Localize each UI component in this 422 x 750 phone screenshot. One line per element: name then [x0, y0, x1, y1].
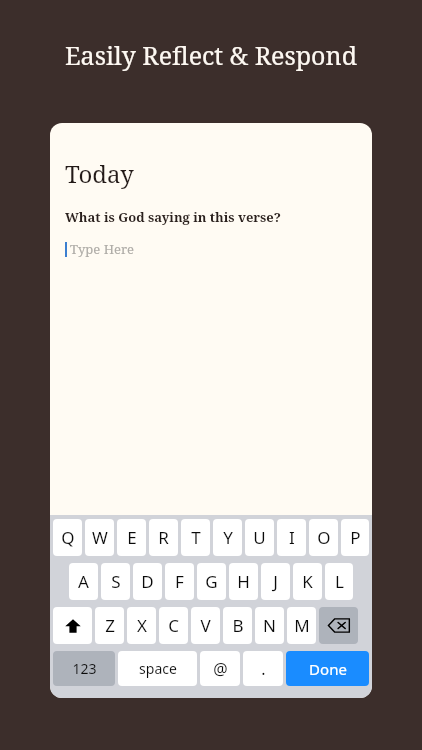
staticText: Y [223, 526, 233, 549]
staticText: Type Here [70, 240, 134, 258]
button[interactable]: K [293, 563, 322, 600]
staticText: I [289, 526, 295, 549]
button[interactable]: @ [200, 651, 240, 686]
button[interactable]: N [255, 607, 284, 644]
button[interactable]: Z [95, 607, 124, 644]
button[interactable]: V [191, 607, 220, 644]
button[interactable]: E [117, 519, 146, 556]
button[interactable]: G [197, 563, 226, 600]
button[interactable]: R [149, 519, 178, 556]
staticText: Today [65, 157, 134, 190]
button[interactable]: U [245, 519, 274, 556]
staticText: space [139, 659, 177, 678]
button[interactable]: B [223, 607, 252, 644]
staticText: C [168, 614, 179, 637]
staticText: L [335, 570, 344, 593]
button[interactable]: 123 [53, 651, 115, 686]
button[interactable]: I [277, 519, 306, 556]
staticText: P [350, 526, 361, 549]
button[interactable]: X [127, 607, 156, 644]
staticText: S [111, 570, 121, 593]
button[interactable]: space [118, 651, 197, 686]
button[interactable]: . [243, 651, 283, 686]
button[interactable]: M [287, 607, 316, 644]
button[interactable]: F [165, 563, 194, 600]
button[interactable]: C [159, 607, 188, 644]
staticText: Q [61, 526, 75, 549]
staticText: A [78, 570, 89, 593]
button[interactable]: Type Here [65, 240, 357, 258]
staticText: W [92, 526, 108, 549]
button[interactable]: P [341, 519, 369, 556]
staticText: X [137, 614, 147, 637]
staticText: . [261, 658, 266, 680]
staticText: M [294, 614, 310, 637]
button[interactable]: Backspace [319, 607, 358, 644]
staticText: 123 [72, 659, 97, 678]
staticText: Easily Reflect & Respond [65, 38, 357, 72]
staticText: U [253, 526, 266, 549]
button[interactable]: T [181, 519, 210, 556]
button[interactable]: S [101, 563, 130, 600]
button[interactable]: J [261, 563, 290, 600]
staticText: B [232, 614, 244, 637]
button[interactable]: D [133, 563, 162, 600]
button[interactable]: Done [286, 651, 369, 686]
staticText: @ [213, 658, 228, 680]
button[interactable]: Q [53, 519, 82, 556]
staticText: What is God saying in this verse? [65, 208, 281, 226]
staticText: O [317, 526, 331, 549]
staticText: Done [309, 659, 347, 679]
staticText: E [127, 526, 137, 549]
button[interactable]: W [85, 519, 114, 556]
button[interactable]: Shift [53, 607, 92, 644]
button[interactable]: H [229, 563, 258, 600]
staticText: G [205, 570, 218, 593]
staticText: F [175, 570, 184, 593]
staticText: T [191, 526, 201, 549]
button[interactable]: L [325, 563, 353, 600]
staticText: Z [105, 614, 115, 637]
staticText: V [200, 614, 211, 637]
staticText: N [263, 614, 276, 637]
staticText: J [273, 570, 278, 593]
button[interactable]: A [69, 563, 98, 600]
staticText: D [141, 570, 154, 593]
button[interactable]: Y [213, 519, 242, 556]
staticText: K [302, 570, 313, 593]
button[interactable]: O [309, 519, 338, 556]
staticText: H [237, 570, 250, 593]
staticText: R [158, 526, 169, 549]
